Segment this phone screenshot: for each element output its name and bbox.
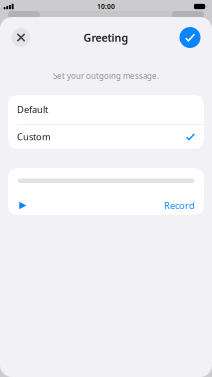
button[interactable]: Custom [8,124,204,149]
staticText: Custom [17,131,51,143]
button[interactable]: Record [164,196,195,214]
button[interactable]: Save [179,27,200,48]
button[interactable]: Default [8,95,204,124]
staticText: 10:00 [97,2,115,11]
staticText: Record [164,199,195,212]
staticText: Greeting [83,30,128,45]
button[interactable]: Close [11,28,30,47]
staticText: Default [17,103,48,116]
staticText: Set your outgoing message. [53,71,159,81]
button[interactable]: Play [14,196,32,214]
